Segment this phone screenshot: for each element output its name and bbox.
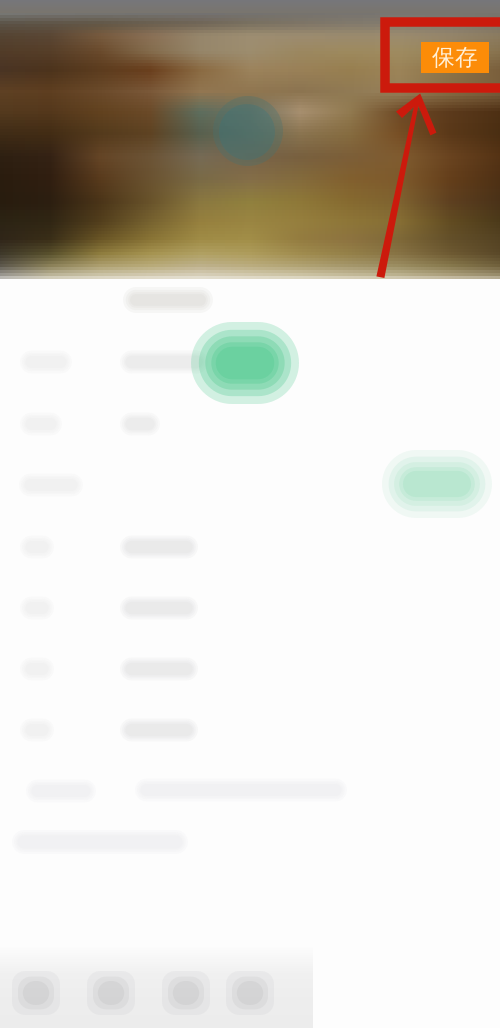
staticText: 保存 xyxy=(432,44,478,71)
button[interactable]: Messages xyxy=(160,967,212,1019)
button[interactable]: Orders xyxy=(85,967,137,1019)
button[interactable]: Profile xyxy=(224,967,276,1019)
button[interactable]: 保存 xyxy=(421,42,489,73)
button[interactable]: Home xyxy=(10,967,62,1019)
